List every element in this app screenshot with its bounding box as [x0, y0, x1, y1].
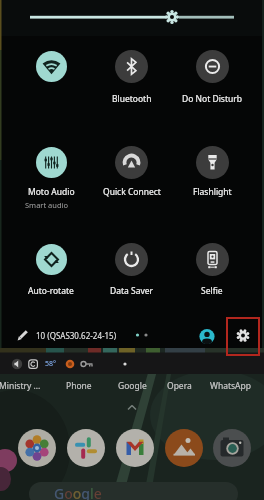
staticText: Google — [54, 484, 102, 500]
button[interactable] — [196, 146, 229, 179]
staticText: Auto-rotate — [28, 285, 74, 297]
staticText: 10 (QSAS30.62-24-15) — [36, 330, 117, 341]
staticText: Data Saver — [110, 285, 154, 297]
button[interactable] — [29, 482, 238, 500]
button[interactable] — [198, 327, 216, 345]
button[interactable] — [36, 244, 67, 275]
button[interactable] — [115, 243, 148, 276]
button[interactable] — [14, 326, 32, 344]
button[interactable] — [116, 429, 154, 467]
button[interactable] — [115, 146, 148, 179]
staticText: WhatsApp — [210, 380, 251, 392]
button[interactable] — [196, 50, 229, 83]
button[interactable] — [213, 429, 251, 467]
staticText: Phone — [66, 380, 92, 392]
staticText: Smart audio — [25, 200, 69, 210]
button[interactable] — [36, 147, 67, 178]
button[interactable] — [67, 429, 105, 467]
staticText: Bluetooth — [112, 93, 152, 105]
staticText: Flashlight — [193, 186, 232, 198]
staticText: 58° — [45, 359, 57, 369]
staticText: Quick Connect — [103, 186, 161, 198]
button[interactable] — [234, 326, 252, 344]
staticText: Ministry ... — [0, 380, 41, 392]
staticText: Do Not Disturb — [182, 93, 242, 105]
button[interactable] — [196, 243, 229, 276]
button[interactable] — [115, 50, 148, 83]
button[interactable] — [36, 51, 67, 82]
staticText: Google — [118, 380, 147, 392]
staticText: Moto Audio — [28, 186, 75, 198]
staticText: Opera — [167, 380, 192, 392]
button[interactable] — [165, 429, 203, 467]
staticText: Selfie — [201, 285, 223, 297]
button[interactable] — [18, 429, 56, 467]
